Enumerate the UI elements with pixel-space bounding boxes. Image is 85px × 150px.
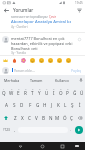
button[interactable]: 7 — [43, 85, 50, 98]
button[interactable]: B — [40, 111, 47, 124]
staticText: Tamam — [30, 78, 43, 83]
button[interactable]: Emoji reaction — [1, 56, 10, 65]
button[interactable]: Kullanıcı — [49, 75, 76, 85]
button[interactable]: 2 — [8, 85, 15, 98]
button[interactable]: L — [62, 98, 69, 111]
staticText: 19:45 — [75, 1, 83, 5]
button[interactable]: S — [10, 98, 18, 111]
button[interactable]: F — [26, 98, 34, 111]
staticText: hazardan, etkinlik ve poptpasi orbi — [11, 41, 73, 46]
staticText: 3 — [18, 87, 20, 90]
staticText: M — [55, 115, 60, 121]
button[interactable]: Sort comments — [73, 6, 85, 14]
button[interactable]: Emoji reaction — [10, 56, 19, 65]
button[interactable]: Emoji reaction — [28, 56, 37, 65]
staticText: D — [20, 102, 24, 108]
staticText: Bonulhost: ceti — [11, 46, 38, 51]
button[interactable]: 5 — [29, 85, 36, 98]
button[interactable]: Home — [35, 142, 49, 150]
button[interactable]: Comma — [12, 124, 18, 135]
button[interactable]: Ğ — [71, 85, 78, 98]
button[interactable]: Ü — [78, 85, 85, 98]
staticText: X — [21, 115, 24, 121]
button[interactable]: 9 — [57, 85, 64, 98]
button[interactable]: Voice input — [76, 75, 85, 85]
staticText: 6 — [39, 87, 41, 90]
button[interactable]: D — [18, 98, 26, 111]
button[interactable]: 0 — [64, 85, 71, 98]
button[interactable]: C — [26, 111, 33, 124]
button[interactable]: Ö — [61, 111, 68, 124]
staticText: Abonelapor Anatalya Amiral bazı iyi — [11, 19, 71, 25]
staticText: 5 — [32, 87, 34, 90]
button[interactable]: Emoji reaction — [46, 56, 55, 65]
button[interactable]: Period — [68, 124, 73, 135]
button[interactable]: Paylaş — [71, 68, 82, 73]
staticText: ?123 — [3, 128, 10, 132]
button[interactable]: H — [41, 98, 48, 111]
staticText: Q — [2, 90, 6, 96]
staticText: Z — [14, 115, 17, 121]
staticText: U — [45, 90, 49, 96]
staticText: 7 — [46, 87, 48, 90]
staticText: G — [36, 102, 40, 108]
button[interactable]: Switch keyboard — [71, 142, 83, 150]
button[interactable]: 6 — [36, 85, 43, 98]
button[interactable]: Emoji reaction — [19, 56, 28, 65]
staticText: O — [59, 90, 63, 96]
button[interactable]: Like — [76, 36, 82, 42]
button[interactable]: 3 — [15, 85, 22, 98]
button[interactable]: Tamam — [24, 75, 49, 85]
button[interactable]: Hide keyboard — [13, 142, 27, 150]
button[interactable]: Recent apps — [55, 142, 69, 150]
button[interactable]: Emoji reaction — [37, 56, 46, 65]
button[interactable]: A — [2, 98, 10, 111]
staticText: P — [66, 90, 69, 96]
button[interactable]: Shift — [0, 111, 11, 124]
staticText: Yorum ekle... — [14, 68, 35, 73]
staticText: Ş — [71, 102, 74, 108]
button[interactable]: Backspace — [75, 111, 85, 124]
button[interactable]: M — [54, 111, 61, 124]
button[interactable]: İ — [76, 98, 83, 111]
button[interactable]: Ş — [69, 98, 76, 111]
button[interactable]: 1 — [0, 85, 8, 98]
staticText: T — [31, 90, 34, 96]
staticText: Çevir — [49, 15, 57, 19]
button[interactable]: 4 — [22, 85, 29, 98]
staticText: Ğ — [73, 90, 77, 96]
button[interactable]: Emoji reaction — [64, 56, 73, 65]
staticText: R — [24, 90, 27, 96]
staticText: N — [49, 115, 53, 121]
staticText: F — [29, 102, 32, 108]
staticText: mentat7777 Bonulhost en çok — [11, 36, 65, 41]
staticText: J — [51, 102, 53, 108]
button[interactable]: Merhaba — [0, 75, 24, 85]
button[interactable]: 8 — [50, 85, 57, 98]
button[interactable]: Ç — [68, 111, 75, 124]
button[interactable]: ?123 — [0, 124, 12, 135]
button[interactable]: V — [33, 111, 40, 124]
staticText: V — [35, 115, 38, 121]
button[interactable]: X — [19, 111, 26, 124]
staticText: İ — [79, 102, 81, 108]
button[interactable]: Back — [0, 6, 13, 14]
button[interactable]: J — [48, 98, 55, 111]
staticText: L — [64, 102, 67, 108]
staticText: W — [9, 90, 14, 96]
button[interactable]: Z — [11, 111, 19, 124]
staticText: 9 — [60, 87, 62, 90]
staticText: I — [53, 90, 55, 96]
staticText: Ö — [63, 115, 67, 121]
staticText: 4 — [25, 87, 27, 90]
staticText: S — [13, 102, 16, 108]
button[interactable]: G — [34, 98, 41, 111]
staticText: Merhaba — [4, 78, 20, 83]
staticText: someuser·on·toprakbeyaz — [11, 15, 48, 19]
button[interactable]: Emoji reaction — [55, 56, 64, 65]
staticText: Ü — [80, 90, 84, 96]
button[interactable]: N — [47, 111, 54, 124]
button[interactable]: Send — [73, 124, 85, 135]
button[interactable]: K — [55, 98, 62, 111]
